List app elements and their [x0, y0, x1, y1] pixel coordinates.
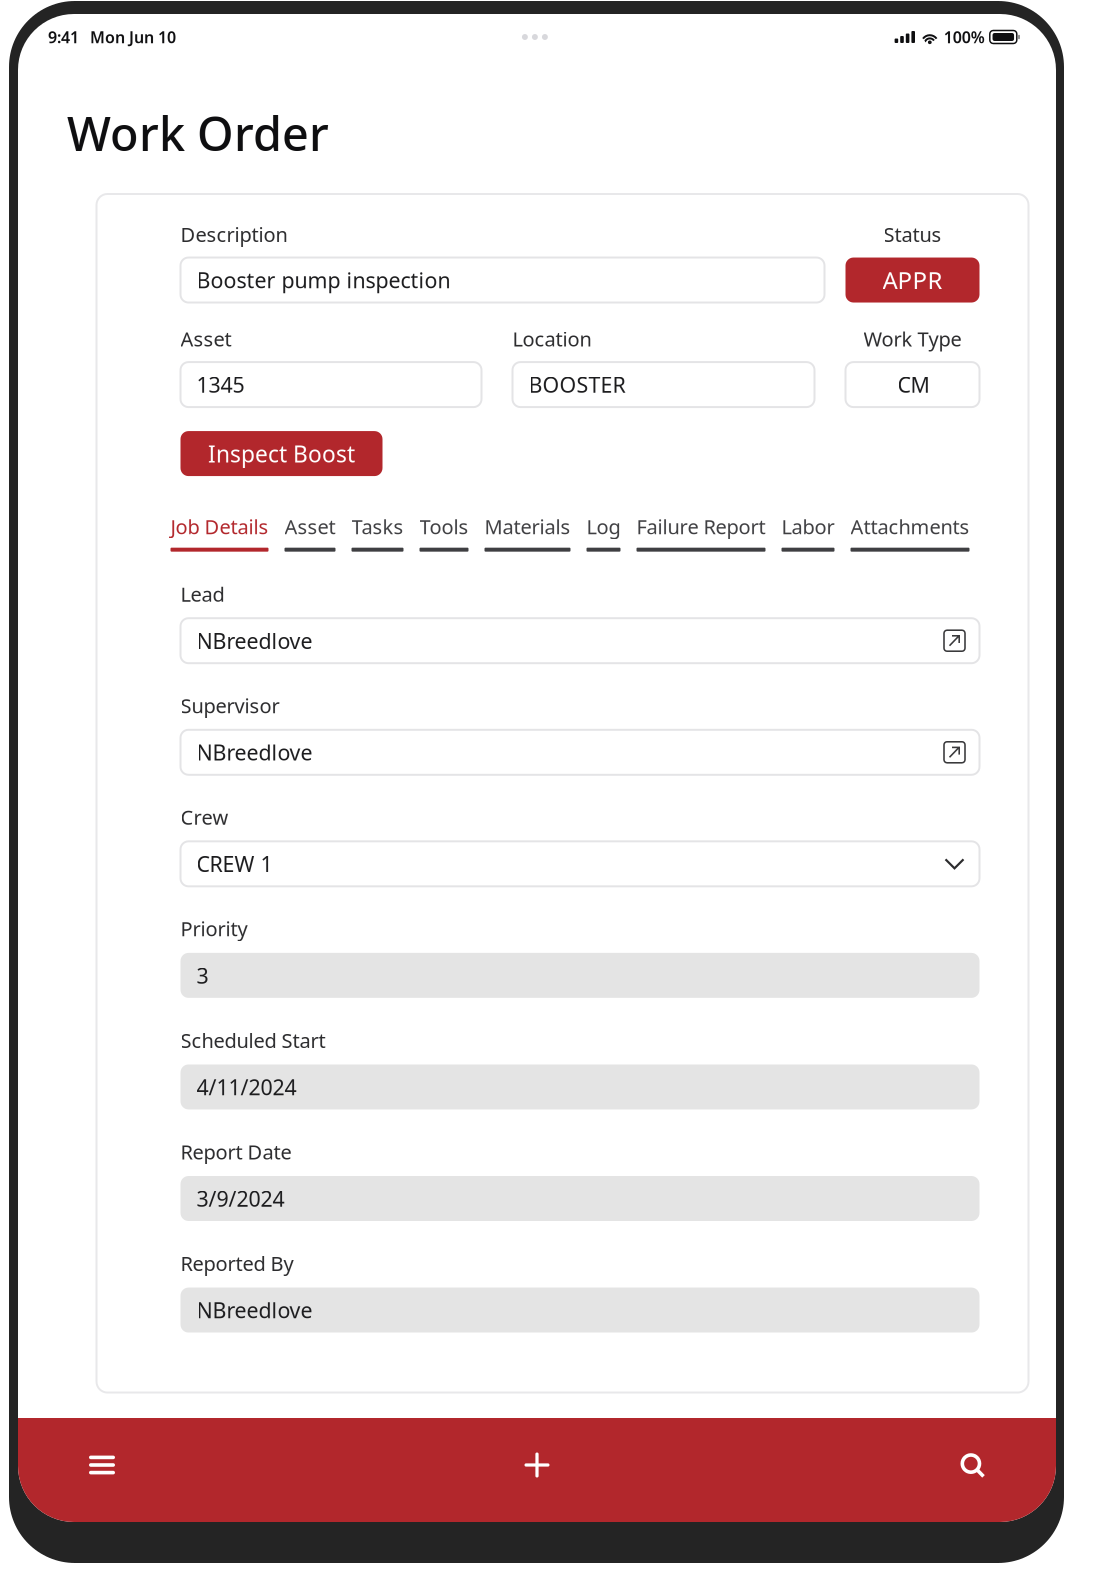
staticText: 100%: [944, 26, 985, 48]
staticText: NBreedlove: [196, 626, 312, 655]
staticText: 9:41: [48, 26, 79, 48]
staticText: Asset: [180, 325, 231, 352]
button[interactable]: Search: [946, 1439, 998, 1491]
staticText: Job Details: [170, 513, 268, 540]
staticText: Scheduled Start: [180, 1027, 325, 1053]
staticText: CREW 1: [196, 850, 272, 878]
button[interactable]: Materials: [484, 513, 570, 552]
staticText: Booster pump inspection: [196, 266, 450, 294]
button[interactable]: Tools: [419, 513, 468, 552]
staticText: 4/11/2024: [196, 1073, 296, 1101]
staticText: Work Type: [863, 325, 961, 352]
staticText: Description: [180, 221, 287, 248]
staticText: APPR: [882, 264, 942, 296]
staticText: Report Date: [180, 1138, 291, 1165]
staticText: Crew: [180, 804, 228, 830]
staticText: Work Order: [67, 102, 329, 164]
staticText: Reported By: [180, 1250, 293, 1277]
staticText: Failure Report: [636, 513, 765, 540]
button[interactable]: Asset: [284, 513, 335, 552]
staticText: Status: [883, 221, 941, 248]
staticText: NBreedlove: [196, 1296, 312, 1324]
staticText: 3/9/2024: [196, 1184, 284, 1213]
staticText: Lead: [180, 581, 224, 607]
staticText: Supervisor: [180, 692, 279, 719]
staticText: 1345: [196, 370, 244, 399]
button[interactable]: Inspect Boost: [180, 431, 382, 476]
button[interactable]: Labor: [781, 513, 834, 552]
button[interactable]: Attachments: [850, 513, 969, 552]
staticText: Inspect Boost: [208, 438, 355, 469]
staticText: BOOSTER: [528, 370, 625, 399]
button[interactable]: Job Details: [170, 513, 268, 552]
button[interactable]: APPR: [845, 257, 979, 302]
button[interactable]: Log: [586, 513, 620, 552]
staticText: Asset: [284, 513, 335, 540]
button[interactable]: Failure Report: [636, 513, 765, 552]
button[interactable]: Tasks: [351, 513, 403, 552]
staticText: Log: [586, 513, 620, 540]
staticText: Attachments: [850, 513, 969, 540]
staticText: CM: [897, 370, 929, 399]
button[interactable]: Add: [511, 1439, 563, 1491]
staticText: Labor: [781, 513, 834, 540]
staticText: Mon Jun 10: [90, 26, 176, 48]
staticText: Tasks: [351, 513, 403, 540]
staticText: Materials: [484, 513, 570, 540]
staticText: Priority: [180, 915, 247, 942]
staticText: Tools: [419, 513, 468, 540]
staticText: 3: [196, 961, 208, 989]
staticText: Location: [512, 325, 591, 352]
button[interactable]: Menu: [76, 1439, 128, 1491]
staticText: NBreedlove: [196, 738, 312, 766]
